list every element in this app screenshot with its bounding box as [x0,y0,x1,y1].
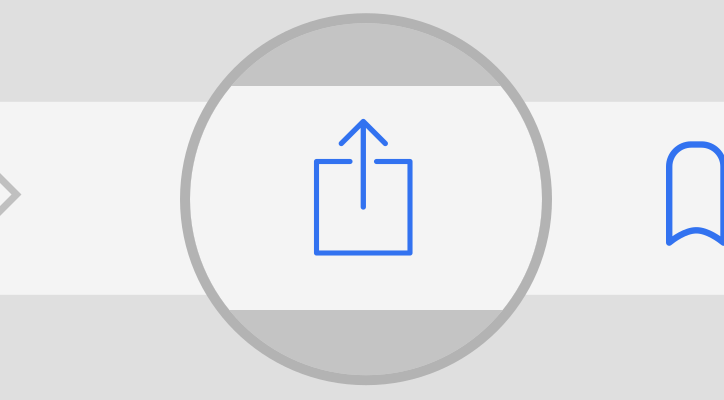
button[interactable]: Forward [0,0,724,400]
button[interactable]: Bookmarks [0,0,724,400]
button[interactable]: Share [0,0,724,400]
